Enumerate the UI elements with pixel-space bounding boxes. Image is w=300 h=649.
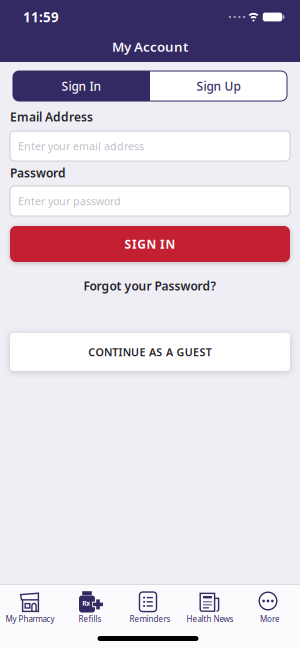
staticText: CONTINUE AS A GUEST [88,345,212,359]
button[interactable]: Rx [60,585,120,629]
button[interactable]: Forgot your Password? [0,278,300,294]
button[interactable]: CONTINUE AS A GUEST [10,333,290,371]
staticText: Reminders [129,614,170,624]
staticText: Enter your email address [18,139,144,153]
button[interactable]: Reminders [120,585,180,629]
staticText: Sign In [61,78,101,94]
staticText: More [260,614,280,624]
staticText: Password [10,165,66,181]
staticText: My Pharmacy [5,614,54,624]
button[interactable]: More [240,585,300,629]
staticText: Refills [78,614,101,624]
staticText: 11:59 [23,8,59,26]
staticText: Health News [186,614,233,624]
staticText: SIGN IN [125,236,175,252]
staticText: Email Address [10,109,93,125]
button[interactable]: My Pharmacy [0,585,60,629]
staticText: My Account [112,38,188,55]
button[interactable]: Sign Up [150,71,287,101]
button[interactable]: Health News [180,585,240,629]
staticText: Enter your password [18,194,121,208]
staticText: Sign Up [196,78,240,94]
staticText: Rx [82,599,90,608]
button[interactable]: Sign In [13,71,150,101]
button[interactable]: SIGN IN [10,226,290,262]
staticText: Forgot your Password? [83,278,216,294]
